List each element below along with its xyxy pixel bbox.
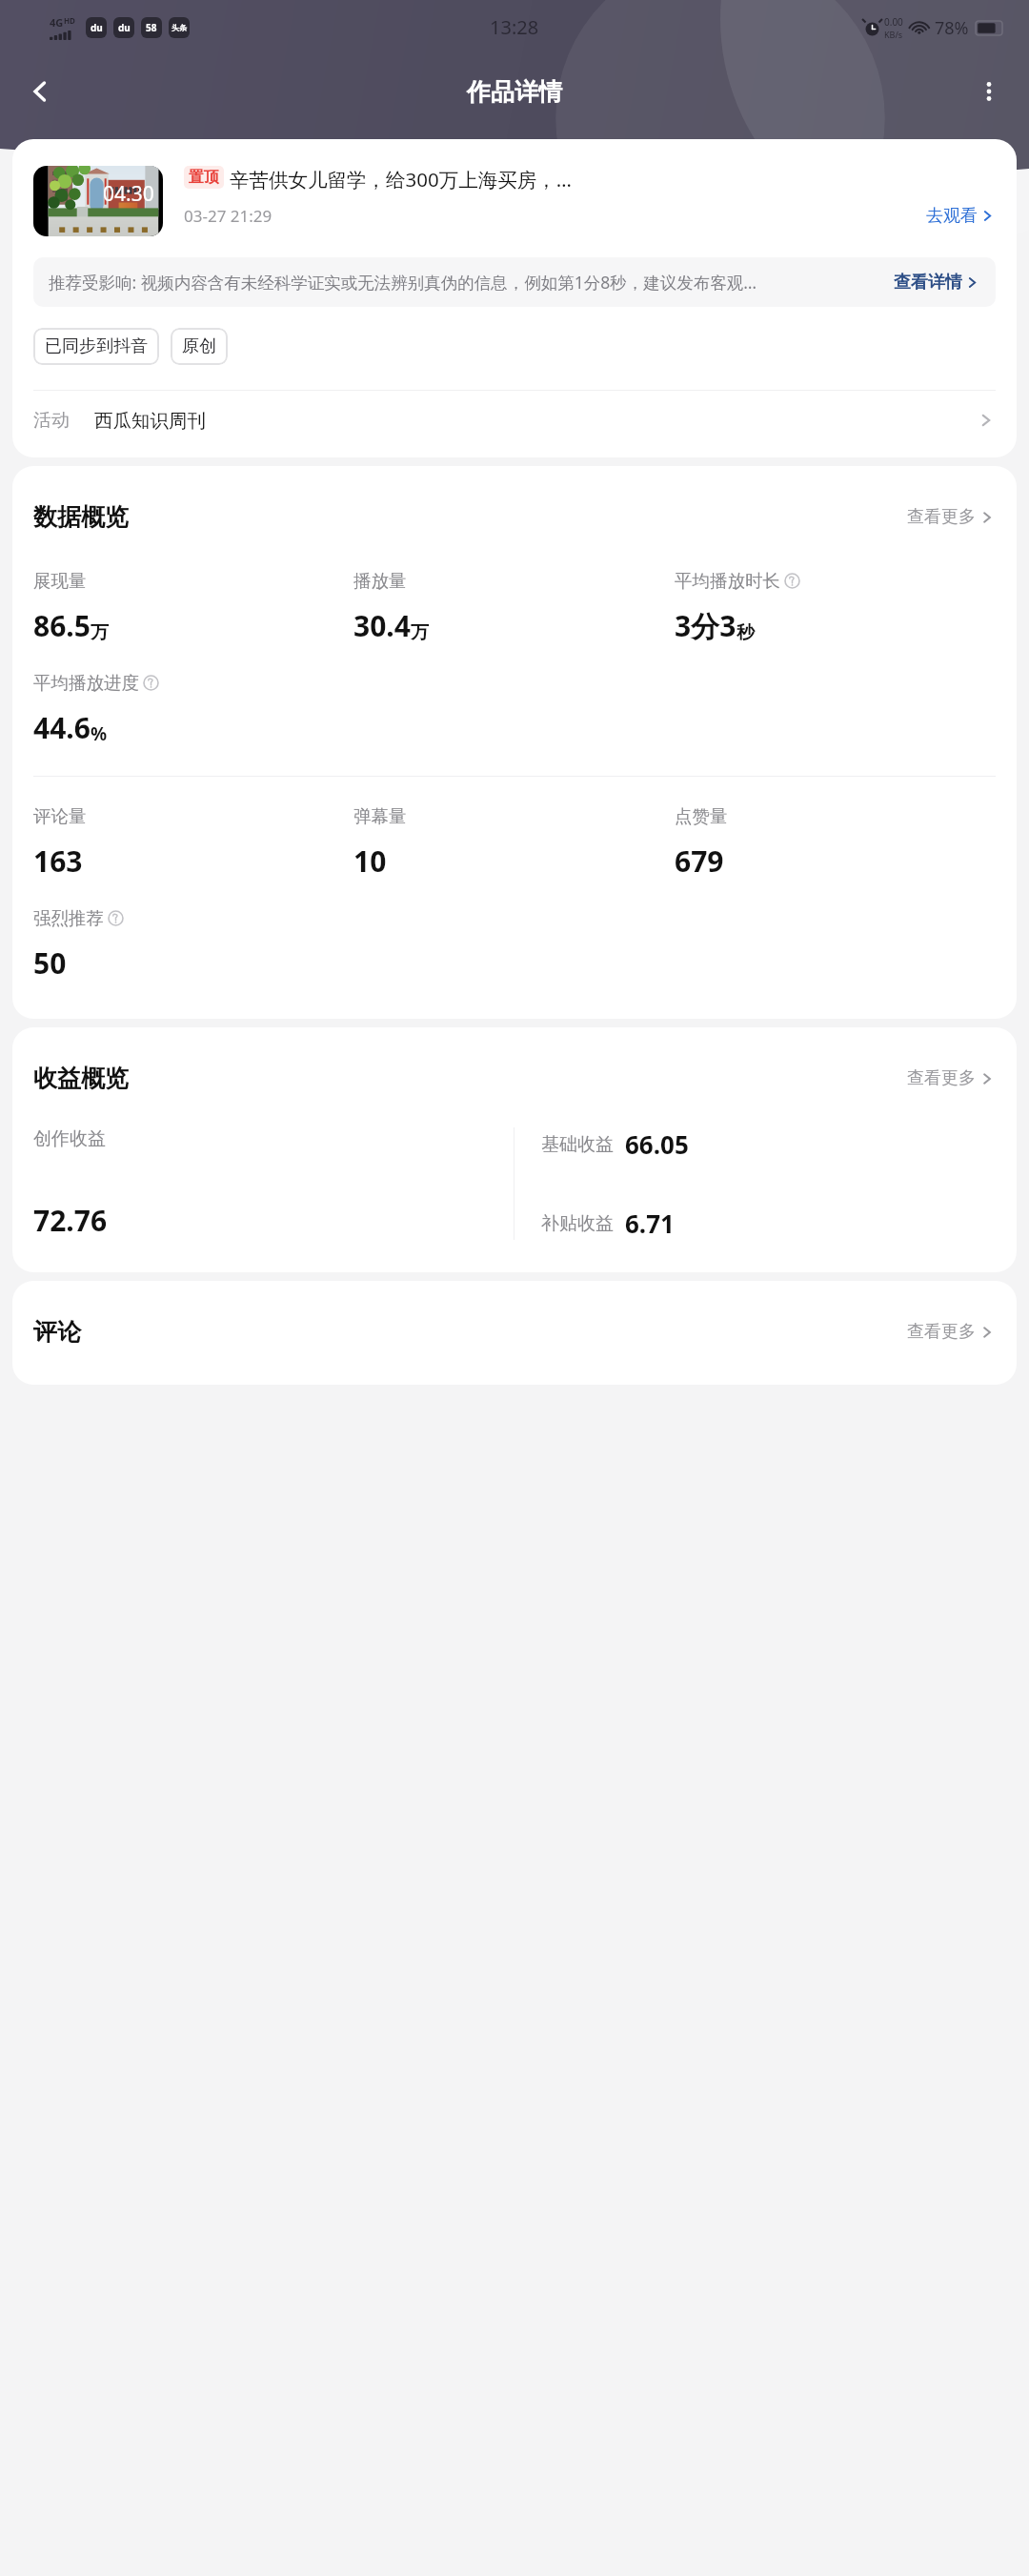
staticText: 活动: [33, 409, 70, 432]
staticText: 点赞量: [675, 805, 728, 827]
button[interactable]: 推荐受影响: 视频内容含有未经科学证实或无法辨别真伪的信息，例如第1分8秒，建议…: [33, 257, 996, 307]
button[interactable]: 查看更多: [907, 506, 996, 528]
staticText: 推荐受影响: 视频内容含有未经科学证实或无法辨别真伪的信息，例如第1分8秒，建议…: [49, 271, 980, 294]
staticText: 查看更多: [907, 1321, 976, 1343]
staticText: 平均播放进度: [33, 672, 139, 694]
staticText: 6.71: [625, 1207, 675, 1240]
staticText: %: [91, 721, 108, 746]
staticText: 原创: [182, 335, 216, 357]
staticText: 秒: [736, 621, 755, 644]
staticText: 78%: [935, 16, 969, 40]
staticText: 强烈推荐: [33, 907, 104, 929]
button[interactable]: 04:30: [33, 166, 996, 236]
staticText: 作品详情: [467, 77, 562, 107]
button[interactable]: 更多: [962, 65, 1016, 118]
staticText: 10: [353, 842, 387, 881]
staticText: 163: [33, 842, 83, 881]
staticText: 收益概览: [33, 1064, 129, 1093]
staticText: 置顶: [189, 168, 219, 187]
staticText: 86.5: [33, 606, 91, 645]
button[interactable]: 原创: [171, 328, 228, 365]
staticText: 万: [91, 621, 109, 644]
staticText: du: [118, 21, 131, 34]
staticText: 播放量: [353, 570, 407, 592]
staticText: 查看更多: [907, 1067, 976, 1089]
staticText: du: [91, 21, 103, 34]
staticText: 评论: [33, 1317, 81, 1347]
staticText: 数据概览: [33, 502, 129, 532]
staticText: HD: [64, 15, 75, 26]
staticText: 西瓜知识周刊: [94, 409, 206, 433]
staticText: 平均播放时长: [675, 570, 780, 592]
staticText: 已同步到抖音: [45, 335, 148, 357]
staticText: 50: [33, 943, 67, 983]
button[interactable]: 查看更多: [907, 1067, 996, 1089]
staticText: 展现量: [33, 570, 87, 592]
button[interactable]: 活动: [33, 391, 996, 450]
staticText: 补贴收益: [541, 1212, 614, 1235]
staticText: 辛苦供女儿留学，给300万上海买房，…: [230, 166, 996, 193]
staticText: 查看详情: [894, 272, 962, 294]
staticText: 弹幕量: [353, 805, 407, 827]
staticText: 3分3: [675, 606, 736, 645]
staticText: 0.00: [884, 15, 903, 29]
button[interactable]: 去观看: [926, 205, 996, 227]
button[interactable]: 查看详情: [894, 272, 980, 294]
button[interactable]: 返回: [13, 65, 67, 118]
staticText: 03-27 21:29: [184, 205, 272, 227]
staticText: 13:28: [490, 14, 539, 40]
staticText: 679: [675, 842, 724, 881]
staticText: 04:30: [103, 180, 154, 208]
staticText: 创作收益: [33, 1127, 106, 1150]
staticText: 基础收益: [541, 1133, 614, 1156]
staticText: 万: [411, 621, 429, 644]
staticText: 去观看: [926, 205, 978, 227]
staticText: 4G: [50, 15, 64, 30]
staticText: 58: [146, 21, 157, 34]
staticText: 30.4: [353, 606, 411, 645]
button[interactable]: 已同步到抖音: [33, 328, 159, 365]
staticText: 72.76: [33, 1201, 108, 1240]
staticText: 44.6: [33, 708, 91, 747]
staticText: 66.05: [625, 1127, 689, 1161]
button[interactable]: 查看更多: [907, 1321, 996, 1343]
staticText: 头条: [171, 23, 187, 32]
staticText: 评论量: [33, 805, 87, 827]
staticText: KB/s: [884, 29, 903, 40]
staticText: 查看更多: [907, 506, 976, 528]
